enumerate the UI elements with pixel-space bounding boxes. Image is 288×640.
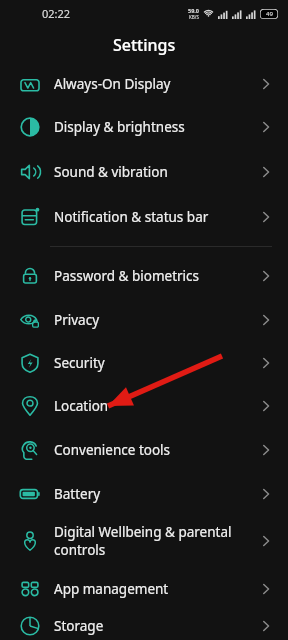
staticText: Notification & status bar [54, 208, 209, 226]
button[interactable]: Sound & vibration [0, 149, 288, 194]
button[interactable]: Convenience tools [0, 428, 288, 472]
staticText: App management [54, 580, 169, 598]
staticText: 49 [266, 10, 273, 18]
button[interactable]: Notification & status bar [0, 194, 288, 239]
staticText: Display & brightness [54, 118, 185, 136]
staticText: Storage [54, 617, 104, 635]
button[interactable]: Display & brightness [0, 104, 288, 149]
staticText: Always-On Display [54, 75, 171, 93]
staticText: Sound & vibration [54, 163, 168, 181]
staticText: Settings [113, 34, 176, 56]
staticText: Password & biometrics [54, 267, 200, 285]
staticText: Battery [54, 485, 101, 503]
button[interactable]: Digital Wellbeing & parental [0, 516, 288, 566]
button[interactable]: Security [0, 341, 288, 384]
button[interactable]: App management [0, 566, 288, 611]
button[interactable]: Privacy [0, 298, 288, 341]
button[interactable]: Storage [0, 611, 288, 640]
staticText: Privacy [54, 311, 100, 329]
staticText: controls [54, 541, 106, 559]
staticText: Security [54, 354, 105, 372]
staticText: Digital Wellbeing & parental [54, 523, 232, 541]
staticText: 59.0 [188, 7, 199, 14]
staticText: KB/S [189, 14, 199, 20]
staticText: Location [54, 397, 109, 415]
button[interactable]: Location [0, 384, 288, 428]
button[interactable]: Password & biometrics [0, 254, 288, 298]
button[interactable]: Always-On Display [0, 64, 288, 104]
button[interactable]: Battery [0, 472, 288, 516]
staticText: 02:22 [42, 6, 71, 21]
staticText: Convenience tools [54, 441, 171, 459]
